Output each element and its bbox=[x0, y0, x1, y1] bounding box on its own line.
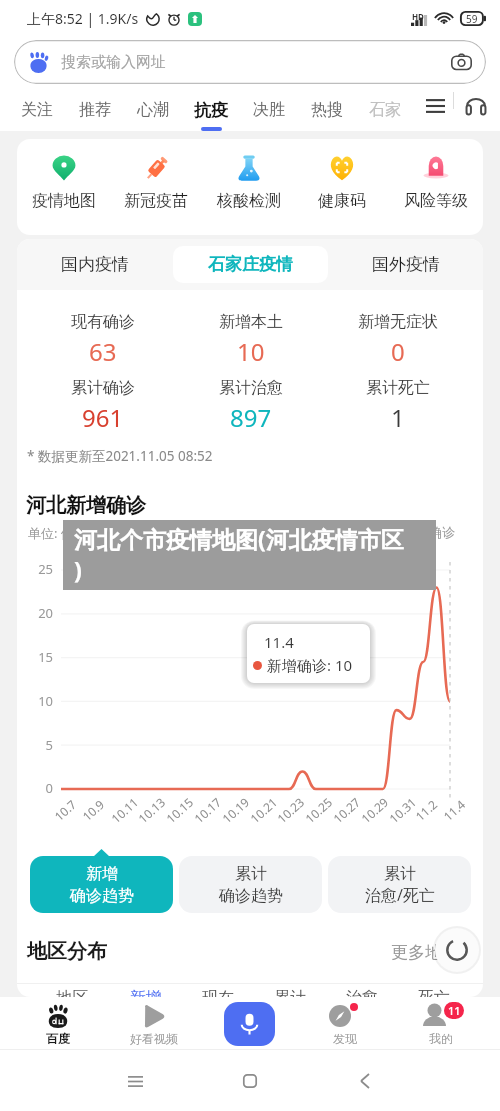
staticText: 百度 bbox=[46, 1031, 70, 1046]
button[interactable]: 累计 治愈/死亡 bbox=[328, 856, 471, 913]
staticText: 累计死亡 bbox=[366, 378, 430, 398]
staticText: HD bbox=[412, 11, 424, 22]
button[interactable]: 心潮 bbox=[124, 92, 182, 132]
staticText: 决胜 bbox=[253, 100, 285, 120]
button[interactable]: 11 bbox=[407, 997, 475, 1050]
staticText: 死亡 bbox=[398, 988, 470, 997]
staticText: 新增本土 bbox=[219, 312, 283, 332]
button[interactable]: 关注 bbox=[8, 92, 66, 132]
staticText: 更多地区 bbox=[391, 942, 459, 963]
button[interactable]: 热搜 bbox=[298, 92, 356, 132]
button[interactable]: 风险等级 bbox=[391, 153, 481, 225]
staticText: 河北个市疫情地图(河北疫情市区 ) bbox=[74, 523, 434, 586]
button[interactable]: 搜索或输入网址 bbox=[14, 40, 486, 84]
staticText: 10.27 bbox=[330, 794, 363, 826]
button[interactable]: Refresh bbox=[440, 933, 474, 967]
staticText: 地区分布 bbox=[27, 939, 107, 964]
button[interactable]: 健康码 bbox=[297, 153, 387, 225]
button[interactable]: 石家 bbox=[356, 92, 414, 132]
staticText: 新增 确诊趋势 bbox=[70, 864, 134, 905]
staticText: 风险等级 bbox=[404, 191, 468, 211]
button[interactable]: 国外疫情 bbox=[328, 246, 483, 283]
staticText: 石家 bbox=[369, 100, 401, 120]
staticText: 10.23 bbox=[274, 794, 307, 826]
staticText: 11.4 bbox=[264, 632, 294, 652]
staticText: 好看视频 bbox=[130, 1031, 178, 1046]
staticText: 累计 确诊趋势 bbox=[219, 864, 283, 905]
staticText: 63 bbox=[89, 335, 117, 368]
button[interactable]: 核酸检测 bbox=[204, 153, 294, 225]
button[interactable]: 发现 bbox=[311, 997, 379, 1050]
staticText: 新增 bbox=[109, 988, 182, 997]
staticText: 0 bbox=[21, 779, 53, 797]
button[interactable]: Camera search bbox=[448, 49, 474, 75]
staticText: 累计确诊 bbox=[71, 378, 135, 398]
staticText: 新增确诊: 10 bbox=[267, 655, 353, 675]
staticText: 上午8:52 | 1.9K/s bbox=[27, 9, 139, 28]
staticText: 治愈 bbox=[326, 988, 398, 997]
staticText: 核酸检测 bbox=[217, 191, 281, 211]
staticText: 关注 bbox=[21, 100, 53, 120]
staticText: 现在 bbox=[182, 988, 254, 997]
button[interactable]: Back bbox=[348, 1064, 382, 1098]
staticText: * 数据更新至2021.11.05 08:52 bbox=[27, 447, 213, 465]
staticText: 新增确诊 bbox=[403, 524, 455, 540]
button[interactable]: 石家庄疫情 bbox=[173, 246, 328, 283]
staticText: 10.9 bbox=[79, 796, 107, 824]
button[interactable]: 累计 确诊趋势 bbox=[179, 856, 322, 913]
staticText: 地区 bbox=[36, 988, 109, 997]
button[interactable]: Voice search bbox=[224, 1002, 275, 1046]
staticText: 我的 bbox=[429, 1031, 453, 1046]
staticText: 累计 bbox=[254, 988, 326, 997]
button[interactable]: 国内疫情 bbox=[17, 246, 173, 283]
staticText: 15 bbox=[21, 648, 53, 666]
staticText: 10.15 bbox=[163, 794, 196, 826]
staticText: 10.31 bbox=[386, 794, 419, 826]
staticText: 搜索或输入网址 bbox=[61, 53, 166, 72]
staticText: 疫情地图 bbox=[32, 191, 96, 211]
staticText: 石家庄疫情 bbox=[208, 254, 293, 275]
button[interactable]: 新冠疫苗 bbox=[111, 153, 201, 225]
button[interactable]: 新增 确诊趋势 bbox=[30, 856, 173, 913]
staticText: 5 bbox=[21, 736, 53, 754]
staticText: 健康码 bbox=[318, 191, 366, 211]
staticText: 10.25 bbox=[302, 794, 335, 826]
staticText: 累计 治愈/死亡 bbox=[365, 864, 435, 906]
staticText: 发现 bbox=[333, 1031, 357, 1046]
button[interactable]: Headphones bbox=[462, 92, 490, 120]
staticText: 11 bbox=[448, 1003, 461, 1018]
staticText: 0 bbox=[391, 335, 405, 368]
staticText: 10.19 bbox=[219, 794, 252, 826]
staticText: 59 bbox=[466, 12, 478, 26]
staticText: 10.17 bbox=[191, 794, 224, 826]
staticText: 897 bbox=[230, 401, 272, 434]
staticText: 10 bbox=[237, 335, 265, 368]
staticText: 推荐 bbox=[79, 100, 111, 120]
staticText: 10.13 bbox=[135, 794, 168, 826]
staticText: 20 bbox=[21, 604, 53, 622]
button[interactable]: 抗疫 bbox=[182, 92, 240, 132]
staticText: 10.29 bbox=[358, 794, 391, 826]
staticText: 10 bbox=[21, 692, 53, 710]
staticText: 热搜 bbox=[311, 100, 343, 120]
button[interactable]: 好看视频 bbox=[120, 997, 188, 1050]
button[interactable]: 疫情地图 bbox=[19, 153, 109, 225]
staticText: 国内疫情 bbox=[61, 254, 129, 275]
button[interactable]: Home bbox=[233, 1064, 267, 1098]
staticText: 抗疫 bbox=[194, 100, 228, 121]
staticText: 新增无症状 bbox=[358, 312, 438, 332]
button[interactable]: 推荐 bbox=[66, 92, 124, 132]
staticText: 10.7 bbox=[51, 796, 79, 824]
staticText: 1 bbox=[391, 401, 405, 434]
staticText: 961 bbox=[82, 401, 124, 434]
staticText: 河北新增确诊 bbox=[26, 493, 146, 518]
button[interactable]: 百度 bbox=[24, 997, 92, 1050]
staticText: 10.21 bbox=[247, 794, 280, 826]
staticText: 25 bbox=[21, 560, 53, 578]
button[interactable]: Recents bbox=[118, 1064, 152, 1098]
button[interactable]: Menu bbox=[421, 92, 449, 120]
staticText: 10.11 bbox=[108, 794, 141, 826]
button[interactable]: 决胜 bbox=[240, 92, 298, 132]
staticText: 现有确诊 bbox=[71, 312, 135, 332]
staticText: 11.4 bbox=[440, 796, 468, 824]
